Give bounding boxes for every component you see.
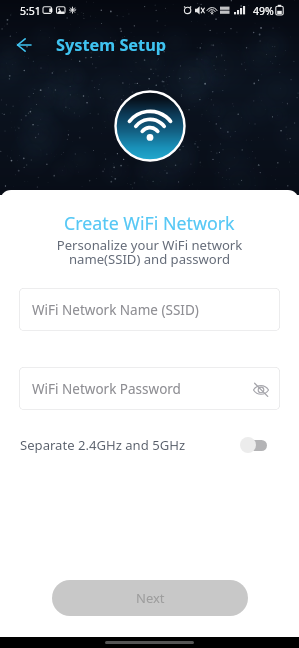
button[interactable]: Next	[52, 580, 248, 616]
staticText: 49%	[253, 4, 274, 18]
staticText: WiFi Network Name (SSID)	[32, 301, 199, 319]
button[interactable]: Back	[8, 29, 40, 61]
button[interactable]: WiFi Network Name (SSID)	[19, 288, 280, 331]
staticText: Personalize your WiFi network name(SSID)…	[0, 236, 299, 268]
staticText: WiFi Network Password	[32, 380, 181, 398]
button[interactable]: Separate 2.4GHz and 5GHz	[240, 437, 267, 453]
button[interactable]: WiFi Network Password	[19, 367, 280, 410]
staticText: Separate 2.4GHz and 5GHz	[20, 436, 186, 454]
staticText: System Setup	[56, 34, 167, 56]
staticText: Create WiFi Network	[64, 211, 235, 235]
button[interactable]: Show password	[251, 379, 271, 399]
staticText: 5:51	[20, 4, 41, 18]
staticText: Next	[136, 589, 165, 607]
